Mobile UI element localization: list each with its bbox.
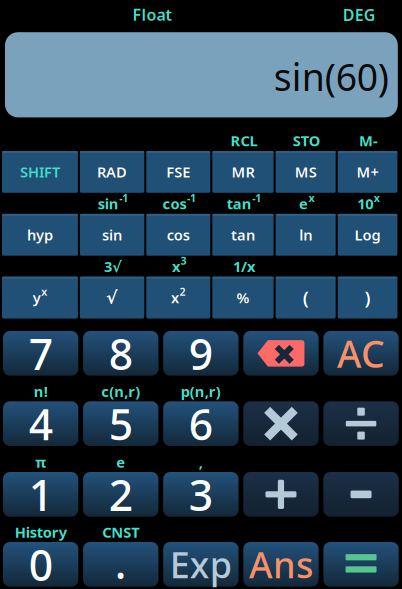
staticText: sin	[102, 225, 122, 245]
staticText: 6	[189, 395, 213, 452]
button[interactable]: .	[83, 542, 158, 587]
staticText: π	[35, 452, 46, 472]
staticText: MS	[295, 162, 317, 182]
button[interactable]: 4	[3, 401, 78, 446]
staticText: cos	[167, 225, 190, 245]
button[interactable]: y	[2, 277, 78, 318]
staticText: CNST	[102, 522, 139, 542]
staticText: 8	[109, 325, 133, 382]
button[interactable]: )	[338, 277, 397, 318]
staticText: x	[41, 285, 47, 299]
button[interactable]: RAD	[80, 151, 144, 193]
button[interactable]: 1	[3, 472, 78, 517]
staticText: tan	[227, 194, 252, 213]
button[interactable]: 2	[83, 472, 158, 517]
button[interactable]: M+	[338, 151, 397, 193]
button[interactable]: x	[146, 277, 210, 318]
staticText: c(n,r)	[101, 382, 140, 401]
button[interactable]: AC	[323, 331, 399, 376]
staticText: p(n,r)	[181, 382, 221, 401]
staticText: Log	[354, 225, 380, 245]
button[interactable]: cos	[146, 214, 210, 256]
staticText: √	[106, 288, 118, 307]
staticText: STO	[293, 131, 321, 150]
staticText: -1	[187, 191, 196, 205]
button[interactable]: ln	[276, 214, 336, 256]
button[interactable]: sin	[80, 214, 144, 256]
staticText: Ans	[249, 540, 313, 588]
button[interactable]: Exp	[163, 542, 238, 587]
button[interactable]: Multiply	[243, 401, 319, 446]
staticText: Float	[132, 4, 171, 25]
staticText: sin(60)	[274, 52, 389, 101]
staticText: sin	[98, 194, 119, 213]
staticText: Exp	[170, 540, 232, 588]
staticText: 4	[29, 395, 53, 452]
button[interactable]: 6	[163, 401, 238, 446]
button[interactable]: 8	[83, 331, 158, 376]
button[interactable]: FSE	[146, 151, 210, 193]
staticText: RCL	[230, 131, 257, 150]
staticText: 3	[189, 466, 213, 523]
staticText: 3	[181, 253, 187, 268]
button[interactable]: 3	[163, 472, 238, 517]
staticText: 1/x	[233, 257, 255, 276]
button[interactable]: hyp	[2, 214, 78, 256]
staticText: 9	[189, 325, 213, 382]
staticText: hyp	[27, 225, 53, 245]
button[interactable]: SHIFT	[2, 151, 78, 193]
staticText: History	[15, 522, 67, 542]
staticText: 3√	[104, 257, 122, 276]
staticText: ,	[199, 452, 203, 472]
button[interactable]: Plus	[243, 472, 319, 517]
staticText: MR	[231, 162, 254, 182]
staticText: n!	[34, 382, 48, 401]
staticText: )	[364, 285, 370, 310]
staticText: 1	[29, 466, 53, 523]
button[interactable]: Equals	[323, 542, 399, 587]
button[interactable]: Minus	[323, 472, 399, 517]
staticText: %	[236, 288, 249, 307]
button[interactable]: √	[80, 277, 144, 318]
button[interactable]: %	[212, 277, 274, 318]
button[interactable]: (	[276, 277, 336, 318]
button[interactable]: MS	[276, 151, 336, 193]
button[interactable]: 5	[83, 401, 158, 446]
button[interactable]: Divide	[323, 401, 399, 446]
button[interactable]: Log	[338, 214, 397, 256]
staticText: DEG	[343, 4, 376, 25]
staticText: -1	[119, 191, 128, 205]
staticText: 0	[29, 536, 53, 589]
staticText: SHIFT	[20, 162, 60, 182]
button[interactable]: Delete	[243, 331, 319, 376]
staticText: x	[172, 257, 180, 276]
button[interactable]: 0	[3, 542, 78, 587]
staticText: M-	[359, 131, 378, 150]
staticText: -1	[252, 191, 261, 205]
button[interactable]: 9	[163, 331, 238, 376]
staticText: 5	[109, 395, 133, 452]
staticText: e	[116, 452, 125, 472]
staticText: FSE	[166, 162, 190, 182]
staticText: ln	[299, 225, 312, 245]
staticText: e	[299, 194, 308, 213]
staticText: 2	[180, 285, 186, 299]
staticText: .	[115, 534, 127, 589]
button[interactable]: Ans	[243, 542, 319, 587]
staticText: M+	[356, 162, 378, 182]
staticText: RAD	[97, 162, 127, 182]
button[interactable]: MR	[212, 151, 274, 193]
staticText: AC	[337, 329, 385, 378]
staticText: 10	[357, 194, 373, 213]
staticText: (	[303, 285, 309, 310]
staticText: 7	[29, 325, 53, 382]
button[interactable]: 7	[3, 331, 78, 376]
staticText: x	[374, 191, 380, 205]
staticText: tan	[231, 225, 255, 245]
staticText: x	[308, 191, 314, 205]
staticText: x	[171, 288, 179, 307]
staticText: 2	[109, 466, 133, 523]
button[interactable]: tan	[212, 214, 274, 256]
staticText: y	[33, 288, 41, 307]
staticText: cos	[163, 194, 187, 213]
